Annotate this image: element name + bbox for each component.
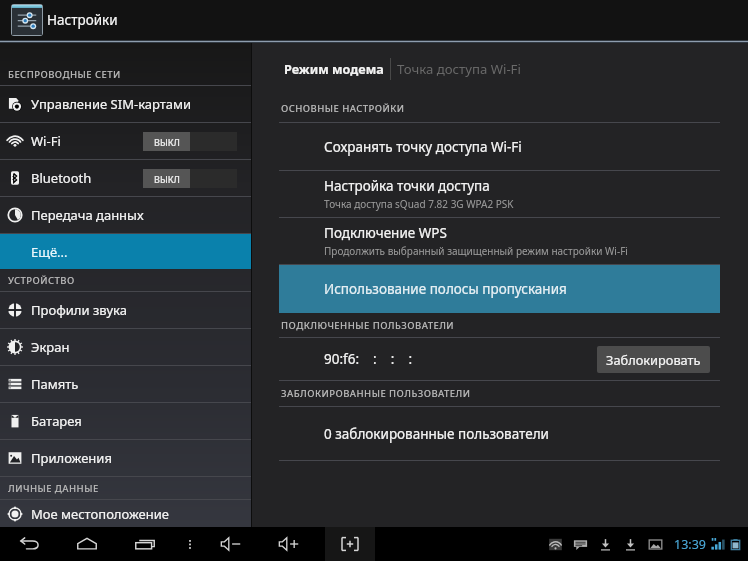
staticText: Wi-Fi — [31, 132, 61, 150]
staticText: БЕСПРОВОДНЫЕ СЕТИ — [8, 68, 121, 81]
staticText: Экран — [31, 338, 70, 356]
button[interactable]: Передача данных — [0, 197, 251, 233]
button[interactable]: Menu — [174, 527, 206, 561]
staticText: УСТРОЙСТВО — [8, 274, 75, 287]
staticText: ПОДКЛЮЧЕННЫЕ ПОЛЬЗОВАТЕЛИ — [281, 319, 455, 332]
staticText: ЛИЧНЫЕ ДАННЫЕ — [8, 482, 99, 495]
staticText: Настройка точки доступа — [324, 177, 490, 195]
button[interactable]: Bluetooth — [0, 160, 251, 196]
button[interactable]: Режим модема — [284, 61, 384, 78]
staticText: 13:39 — [674, 536, 706, 553]
staticText: Сохранять точку доступа Wi-Fi — [324, 138, 522, 156]
staticText: ВЫКЛ — [154, 136, 180, 148]
button[interactable]: Приложения — [0, 440, 251, 476]
staticText: Приложения — [31, 449, 112, 467]
button[interactable]: Подключение WPS — [279, 218, 720, 264]
button[interactable]: Сохранять точку доступа Wi-Fi — [279, 123, 720, 170]
button[interactable]: Заблокировать — [597, 346, 710, 373]
staticText: ЗАБЛОКИРОВАННЫЕ ПОЛЬЗОВАТЕЛИ — [281, 387, 471, 400]
staticText: 0 заблокированные пользователи — [324, 425, 549, 443]
button[interactable]: Использование полосы пропускания — [279, 265, 720, 313]
staticText: Использование полосы пропускания — [324, 280, 567, 298]
button[interactable]: Настройки — [0, 0, 132, 40]
button[interactable]: 90:f6: : : : — [279, 338, 720, 380]
staticText: Точка доступа sQuad 7.82 3G WPA2 PSK — [324, 197, 514, 211]
button[interactable]: Память — [0, 366, 251, 402]
button[interactable]: Точка доступа Wi-Fi — [397, 60, 521, 78]
button[interactable]: 0 заблокированные пользователи — [279, 407, 720, 460]
staticText: Передача данных — [31, 206, 144, 224]
staticText: Память — [31, 375, 79, 393]
staticText: Подключение WPS — [324, 224, 447, 242]
button[interactable]: Мое местоположение — [0, 500, 251, 527]
staticText: Ещё... — [31, 243, 68, 261]
button[interactable]: Ещё... — [0, 234, 251, 269]
button[interactable]: Управление SIM-картами — [0, 86, 251, 122]
button[interactable]: Home — [71, 527, 103, 561]
staticText: Мое местоположение — [31, 505, 169, 523]
button[interactable]: Recents — [129, 527, 161, 561]
staticText: Bluetooth — [31, 169, 92, 187]
button[interactable]: Экран — [0, 329, 251, 365]
button[interactable]: Screenshot — [325, 527, 375, 561]
staticText: Батарея — [31, 412, 82, 430]
button[interactable]: Volume down — [215, 527, 247, 561]
staticText: Продолжить выбранный защищенный режим на… — [324, 244, 628, 258]
button[interactable]: Wi-Fi — [0, 123, 251, 159]
staticText: ВЫКЛ — [154, 173, 180, 185]
staticText: Заблокировать — [606, 351, 701, 368]
staticText: ОСНОВНЫЕ НАСТРОЙКИ — [281, 102, 405, 115]
staticText: Управление SIM-картами — [31, 95, 192, 113]
button[interactable]: Volume up — [273, 527, 305, 561]
button[interactable]: Настройка точки доступа — [279, 171, 720, 217]
staticText: 90:f6: : : : — [324, 350, 413, 368]
staticText: Профили звука — [31, 301, 127, 319]
button[interactable]: Профили звука — [0, 292, 251, 328]
button[interactable]: Батарея — [0, 403, 251, 439]
button[interactable]: Back — [14, 527, 46, 561]
staticText: Настройки — [47, 11, 118, 29]
